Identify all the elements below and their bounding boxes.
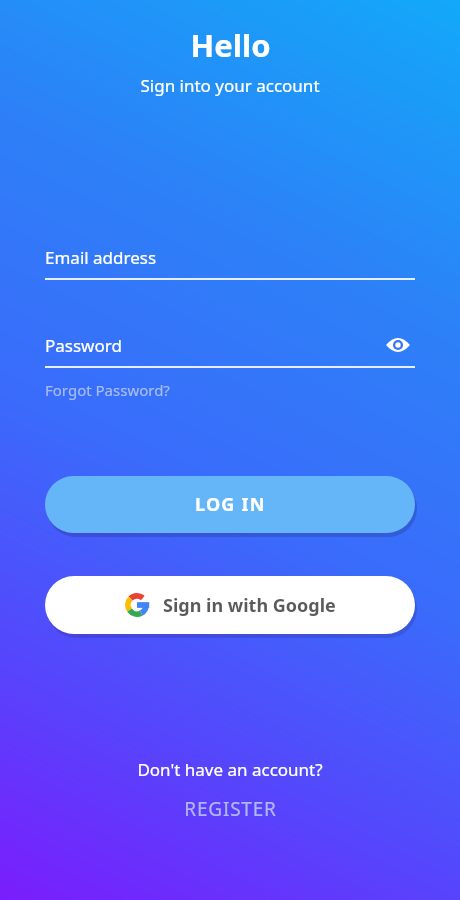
staticText: Password [45, 334, 122, 357]
staticText: Hello [190, 24, 271, 66]
staticText: REGISTER [184, 796, 277, 822]
staticText: Email address [45, 246, 157, 269]
staticText: Don't have an account? [137, 758, 323, 781]
staticText: Sign in with Google [163, 593, 336, 618]
staticText: Sign into your account [140, 74, 320, 97]
button[interactable]: Sign in with Google [45, 576, 415, 634]
button[interactable]: Forgot Password? [45, 376, 170, 404]
button[interactable]: REGISTER [172, 793, 289, 825]
button[interactable]: Show password [381, 328, 415, 362]
staticText: LOG IN [195, 492, 266, 517]
button[interactable]: Email address [45, 236, 415, 278]
button[interactable]: LOG IN [45, 476, 415, 533]
button[interactable]: Password [45, 324, 415, 366]
staticText: Forgot Password? [45, 380, 170, 400]
